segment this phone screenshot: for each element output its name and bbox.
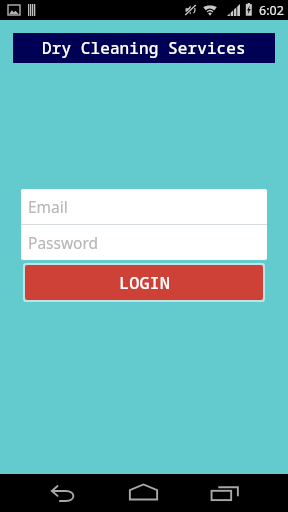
staticText: Dry Cleaning Services <box>42 37 246 59</box>
staticText: Email <box>28 196 68 217</box>
button[interactable]: Home <box>120 474 168 512</box>
staticText: Password <box>28 232 99 253</box>
button[interactable]: Recents <box>201 474 249 512</box>
button[interactable]: Email <box>28 189 267 224</box>
staticText: LOGIN <box>119 271 170 294</box>
staticText: 6:02 <box>259 2 284 19</box>
button[interactable]: LOGIN <box>25 265 263 300</box>
button[interactable]: Password <box>28 225 267 260</box>
button[interactable]: Back <box>39 474 87 512</box>
button[interactable]: Dry Cleaning Services <box>13 33 275 63</box>
